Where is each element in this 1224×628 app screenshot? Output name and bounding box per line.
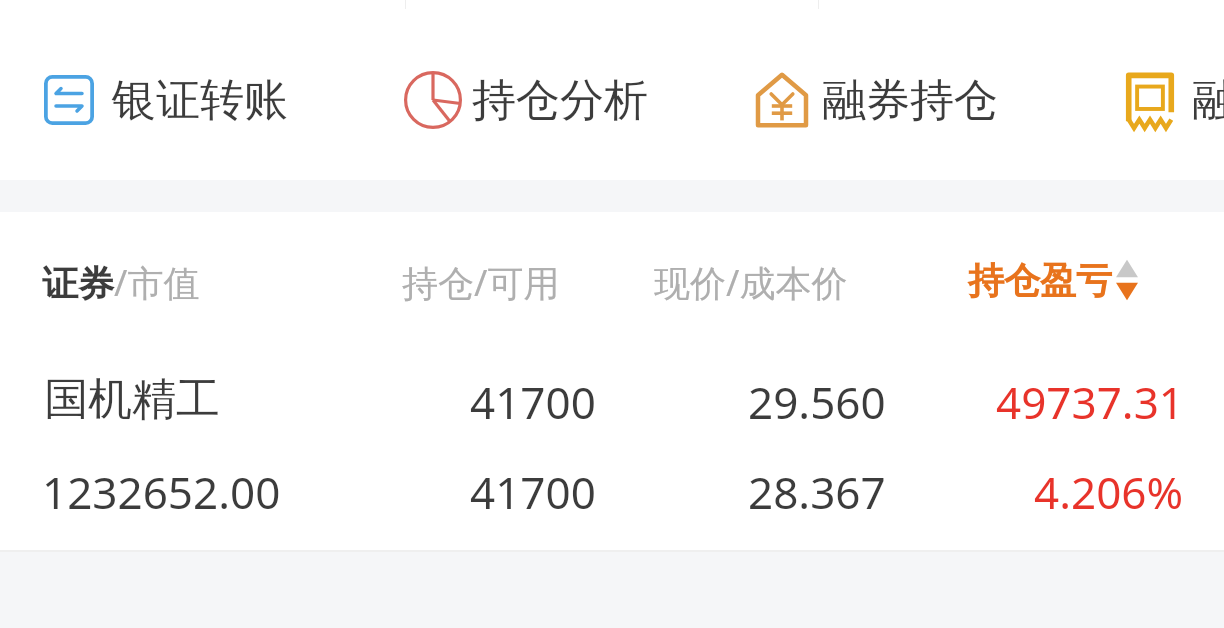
staticText: 41700 xyxy=(470,372,596,432)
other: 银证转账 xyxy=(44,75,94,125)
button[interactable]: 持仓分析 xyxy=(390,62,662,138)
staticText: 融 xyxy=(1192,73,1224,128)
button[interactable]: 融券持仓 xyxy=(738,62,1012,138)
staticText: 融券持仓 xyxy=(822,73,998,128)
button[interactable]: 融资 xyxy=(1108,62,1224,138)
staticText: 持仓分析 xyxy=(472,73,648,128)
staticText: 4.206% xyxy=(1034,462,1184,522)
other: 融资 xyxy=(1122,72,1178,128)
other: 持仓分析 xyxy=(404,71,462,129)
staticText: 1232652.00 xyxy=(42,462,281,522)
staticText: 41700 xyxy=(470,462,596,522)
staticText: 持仓/可用 xyxy=(402,258,560,307)
staticText: 29.560 xyxy=(748,372,886,432)
staticText: 28.367 xyxy=(748,462,886,522)
button[interactable]: 银证转账 xyxy=(30,62,302,138)
other: 融券持仓 xyxy=(752,70,812,130)
staticText: 国机精工 xyxy=(44,372,220,427)
staticText: 持仓盈亏 xyxy=(968,258,1112,303)
staticText: 银证转账 xyxy=(112,73,288,128)
button[interactable]: 国机精工 xyxy=(0,342,1224,550)
staticText: 49737.31 xyxy=(996,372,1184,432)
staticText: 证券/市值 xyxy=(42,258,200,307)
staticText: 现价/成本价 xyxy=(654,258,848,307)
button[interactable]: 持仓盈亏 xyxy=(960,250,1146,310)
